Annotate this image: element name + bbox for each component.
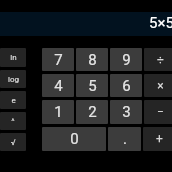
button[interactable]: −: [144, 100, 172, 124]
button[interactable]: 7: [42, 48, 74, 71]
staticText: −: [157, 105, 164, 119]
staticText: ×: [157, 79, 164, 93]
staticText: +: [156, 132, 163, 146]
staticText: log: [8, 75, 19, 84]
staticText: ÷: [157, 53, 164, 67]
button[interactable]: ×: [144, 74, 172, 97]
button[interactable]: ln: [0, 48, 26, 67]
staticText: e: [11, 96, 16, 105]
button[interactable]: 3: [110, 100, 142, 124]
button[interactable]: 4: [42, 74, 74, 97]
staticText: 3: [122, 103, 131, 121]
button[interactable]: 2: [76, 100, 108, 124]
staticText: 4: [54, 77, 63, 95]
button[interactable]: +: [143, 127, 172, 151]
staticText: 6: [122, 77, 131, 95]
staticText: 7: [54, 51, 63, 69]
button[interactable]: 9: [110, 48, 142, 71]
staticText: 9: [122, 51, 131, 69]
staticText: 1: [54, 103, 63, 121]
button[interactable]: ÷: [144, 48, 172, 71]
button[interactable]: e: [0, 91, 26, 109]
staticText: 0: [70, 130, 79, 148]
button[interactable]: .: [108, 127, 141, 151]
staticText: .: [123, 130, 127, 148]
staticText: 2: [88, 103, 97, 121]
button[interactable]: √: [0, 133, 26, 151]
button[interactable]: 8: [76, 48, 108, 71]
button[interactable]: 6: [110, 74, 142, 97]
staticText: 8: [88, 51, 97, 69]
staticText: 5: [88, 77, 97, 95]
staticText: √: [11, 138, 16, 147]
button[interactable]: 1: [42, 100, 74, 124]
button[interactable]: 5: [76, 74, 108, 97]
button[interactable]: log: [0, 70, 26, 88]
staticText: 5×5: [149, 14, 172, 32]
staticText: ^: [11, 117, 15, 126]
staticText: ln: [10, 53, 17, 62]
button[interactable]: 0: [42, 127, 106, 151]
button[interactable]: ^: [0, 112, 26, 130]
